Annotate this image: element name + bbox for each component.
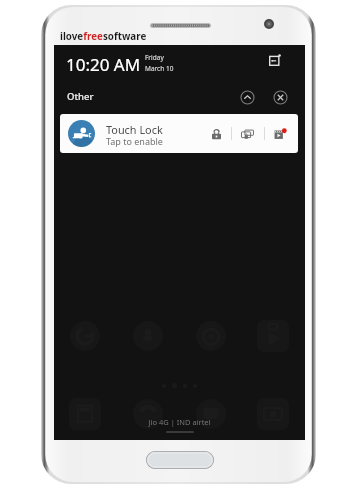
button[interactable]: Touch Lock xyxy=(60,114,298,153)
staticText: March 10 xyxy=(145,64,174,73)
staticText: Tap to enable xyxy=(106,135,163,147)
staticText: ilovefreesoftware xyxy=(60,30,147,43)
button[interactable]: Lock xyxy=(206,124,226,144)
staticText: Friday xyxy=(145,53,164,62)
button[interactable]: Cast xyxy=(237,124,257,144)
staticText: Touch Lock xyxy=(106,122,163,137)
button[interactable]: Manage notifications xyxy=(265,50,285,70)
button[interactable]: Close xyxy=(272,89,289,106)
staticText: Jio 4G | IND airtel xyxy=(54,417,305,427)
button[interactable]: Media xyxy=(269,124,289,144)
staticText: 10:20 AM xyxy=(66,53,141,76)
button[interactable]: Collapse xyxy=(239,89,256,106)
staticText: Other xyxy=(67,90,94,103)
